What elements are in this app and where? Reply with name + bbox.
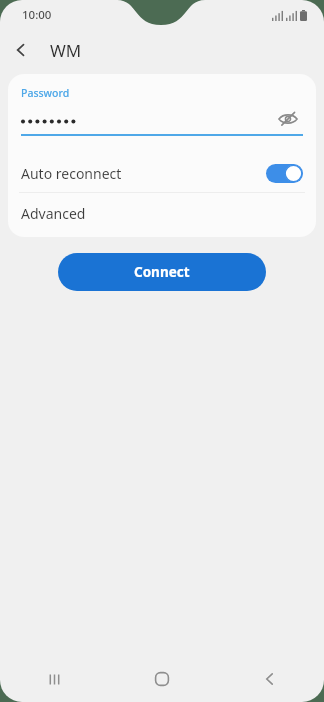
button[interactable]: Recents [0, 656, 108, 702]
staticText: Connect [134, 263, 190, 281]
staticText: Advanced [21, 204, 86, 223]
staticText: Auto reconnect [21, 164, 266, 183]
button[interactable]: Advanced [8, 193, 316, 233]
button[interactable]: Auto reconnect toggle [266, 164, 303, 183]
button[interactable]: Home [108, 656, 216, 702]
button[interactable]: Back [216, 656, 324, 702]
staticText: 10:00 [22, 7, 52, 23]
button[interactable]: Show password [273, 106, 303, 132]
button[interactable]: Connect [58, 253, 266, 291]
button[interactable]: Back [0, 30, 42, 70]
staticText: Password [21, 86, 70, 100]
button[interactable]: Auto reconnect [8, 154, 316, 192]
staticText: WM [50, 39, 82, 62]
